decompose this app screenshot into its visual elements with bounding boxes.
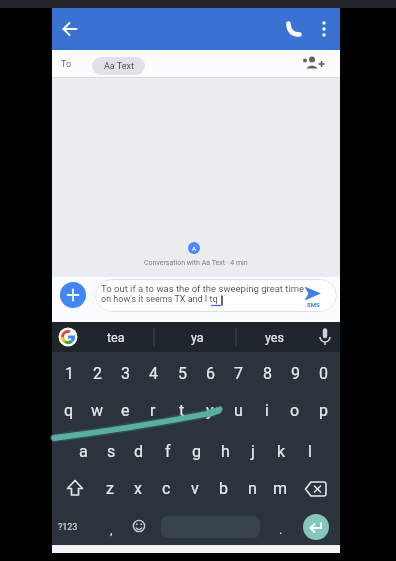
staticText: 1 <box>65 364 74 383</box>
button[interactable]: 5 <box>169 358 195 388</box>
staticText: p <box>319 401 328 420</box>
button[interactable]: c <box>153 473 179 503</box>
staticText: on how's it seems TX and I tq <box>101 294 218 305</box>
button[interactable]: o <box>282 395 308 425</box>
button[interactable]: w <box>84 395 110 425</box>
button[interactable] <box>95 279 337 312</box>
staticText: 6 <box>206 364 215 383</box>
staticText: i <box>265 401 269 420</box>
staticText: e <box>121 401 130 420</box>
staticText: To <box>61 59 72 70</box>
button[interactable]: i <box>254 395 280 425</box>
staticText: SMS <box>307 301 320 308</box>
staticText: 2 <box>93 364 102 383</box>
button[interactable]: q <box>56 395 82 425</box>
button[interactable]: f <box>155 436 181 466</box>
button[interactable]: h <box>212 436 238 466</box>
button[interactable] <box>303 514 329 540</box>
staticText: 3 <box>121 364 130 383</box>
button[interactable] <box>60 282 86 308</box>
button[interactable]: 9 <box>282 358 308 388</box>
button[interactable] <box>56 325 80 349</box>
staticText: y <box>206 401 214 420</box>
button[interactable]: k <box>268 436 294 466</box>
button[interactable] <box>127 514 151 538</box>
staticText: tea <box>107 330 125 345</box>
button[interactable]: 4 <box>140 358 166 388</box>
staticText: 7 <box>234 364 243 383</box>
button[interactable] <box>60 474 90 502</box>
staticText: o <box>290 401 300 420</box>
button[interactable]: n <box>239 473 265 503</box>
staticText: d <box>134 442 144 461</box>
staticText: n <box>248 479 257 498</box>
button[interactable]: b <box>210 473 236 503</box>
button[interactable] <box>298 280 332 310</box>
button[interactable]: r <box>140 395 166 425</box>
staticText: a <box>79 442 88 461</box>
button[interactable]: 6 <box>197 358 223 388</box>
button[interactable]: Aa Text <box>92 57 145 75</box>
button[interactable]: s <box>98 436 124 466</box>
staticText: yes <box>265 330 284 345</box>
button[interactable]: d <box>126 436 152 466</box>
staticText: c <box>162 479 171 498</box>
staticText: r <box>150 401 156 420</box>
staticText: ?123 <box>58 522 78 533</box>
button[interactable]: 8 <box>254 358 280 388</box>
button[interactable]: j <box>240 436 266 466</box>
staticText: . <box>279 522 283 537</box>
button[interactable]: 7 <box>225 358 251 388</box>
staticText: To out if a to was the of the sweeping g… <box>101 283 305 294</box>
button[interactable]: t <box>169 395 195 425</box>
button[interactable]: ya <box>162 322 232 352</box>
staticText: 9 <box>291 364 300 383</box>
button[interactable]: a <box>70 436 96 466</box>
button[interactable]: 0 <box>310 358 336 388</box>
button[interactable]: 2 <box>84 358 110 388</box>
staticText: k <box>277 442 286 461</box>
button[interactable] <box>54 11 88 47</box>
staticText: w <box>91 401 104 420</box>
staticText: q <box>64 401 74 420</box>
button[interactable]: 1 <box>56 358 82 388</box>
button[interactable]: e <box>112 395 138 425</box>
button[interactable]: tea <box>81 322 151 352</box>
button[interactable] <box>313 324 337 351</box>
staticText: A <box>192 245 196 252</box>
staticText: , <box>110 522 113 537</box>
staticText: 4 <box>149 364 158 383</box>
staticText: l <box>308 442 312 461</box>
button[interactable]: z <box>97 473 123 503</box>
button[interactable]: x <box>125 473 151 503</box>
button[interactable] <box>277 11 311 47</box>
button[interactable]: m <box>267 473 293 503</box>
button[interactable] <box>300 50 330 77</box>
staticText: u <box>234 401 243 420</box>
staticText: t <box>179 401 185 420</box>
button[interactable]: 3 <box>112 358 138 388</box>
button[interactable]: ?123 <box>48 513 88 541</box>
staticText: j <box>251 442 255 461</box>
button[interactable]: y <box>197 395 223 425</box>
staticText: Conversation with Aa Text · 4 min <box>144 259 248 267</box>
button[interactable]: yes <box>242 322 306 352</box>
staticText: g <box>192 442 201 461</box>
button[interactable] <box>310 11 338 47</box>
staticText: v <box>191 479 199 498</box>
staticText: ya <box>191 330 204 345</box>
button[interactable]: l <box>297 436 323 466</box>
button[interactable]: , <box>101 515 121 543</box>
button[interactable]: v <box>182 473 208 503</box>
button[interactable]: . <box>271 515 291 543</box>
staticText: h <box>221 442 230 461</box>
staticText: x <box>134 479 142 498</box>
button[interactable] <box>301 474 334 502</box>
button[interactable]: u <box>225 395 251 425</box>
staticText: s <box>107 442 116 461</box>
staticText: 0 <box>319 364 328 383</box>
button[interactable]: g <box>183 436 209 466</box>
button[interactable]: p <box>310 395 336 425</box>
staticText: z <box>106 479 114 498</box>
